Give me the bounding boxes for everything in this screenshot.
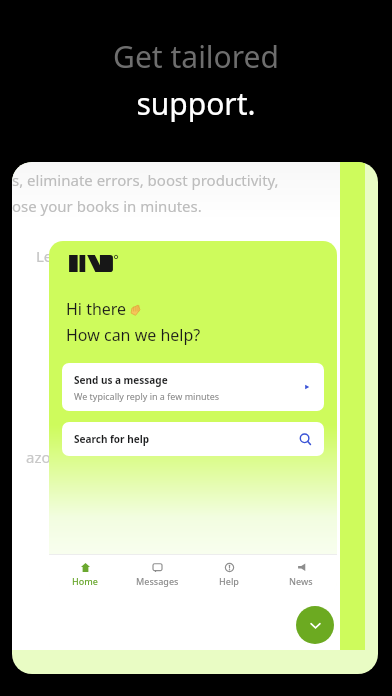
staticText: Send us a message xyxy=(74,373,168,387)
button[interactable]: Help xyxy=(193,555,265,595)
staticText: Home xyxy=(72,575,98,587)
staticText: We typically reply in a few minutes xyxy=(74,390,220,402)
button[interactable]: News xyxy=(265,555,337,595)
button[interactable]: Messages xyxy=(121,555,193,595)
staticText: News xyxy=(289,575,313,587)
staticText: Get tailored xyxy=(113,36,279,77)
staticText: support. xyxy=(136,83,256,124)
button[interactable]: Send us a message xyxy=(62,363,324,411)
staticText: ose your books in minutes. xyxy=(12,196,202,216)
staticText: Hi there xyxy=(66,298,127,320)
button[interactable]: Close messenger xyxy=(296,606,334,644)
staticText: How can we help? xyxy=(66,324,201,346)
staticText: s, eliminate errors, boost productivity, xyxy=(12,170,279,190)
button[interactable]: Search for help xyxy=(62,422,324,456)
staticText: Learn more » xyxy=(36,246,133,266)
button[interactable]: Home xyxy=(49,555,121,595)
staticText: Search for help xyxy=(74,432,299,446)
staticText: azon xyxy=(26,447,60,467)
staticText: Messages xyxy=(136,575,179,587)
staticText: Help xyxy=(219,575,239,587)
